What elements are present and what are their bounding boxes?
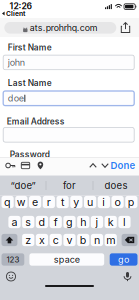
- staticText: go: [118, 254, 129, 265]
- staticText: h: [80, 215, 86, 228]
- staticText: p: [128, 195, 135, 208]
- button[interactable]: Credit cards: [19, 159, 32, 172]
- button[interactable]: m: [105, 234, 117, 246]
- staticText: d: [38, 215, 45, 228]
- button[interactable]: c: [50, 234, 62, 246]
- button[interactable]: x: [36, 234, 48, 246]
- button[interactable]: q: [1, 196, 14, 208]
- button[interactable]: Share: [119, 21, 133, 35]
- staticText: m: [106, 233, 115, 246]
- staticText: u: [87, 195, 93, 208]
- staticText: e: [32, 195, 38, 208]
- button[interactable]: john: [3, 55, 134, 70]
- staticText: c: [53, 233, 59, 246]
- staticText: s: [25, 215, 31, 228]
- button[interactable]: l: [118, 216, 131, 228]
- button[interactable]: 123: [1, 253, 24, 266]
- staticText: for: [63, 180, 76, 191]
- staticText: v: [66, 233, 72, 246]
- staticText: First Name: [8, 42, 52, 52]
- button[interactable]: Contact info: [34, 159, 47, 172]
- button[interactable]: Previous field: [87, 159, 99, 171]
- staticText: Last Name: [8, 78, 52, 88]
- staticText: Client: [6, 10, 25, 18]
- staticText: Email Address: [7, 116, 65, 127]
- button[interactable]: doe: [3, 91, 134, 106]
- staticText: n: [94, 233, 100, 246]
- button[interactable]: Passwords: [4, 159, 17, 172]
- button[interactable]: space: [29, 253, 104, 266]
- button[interactable]: j: [91, 216, 103, 228]
- button[interactable]: y: [70, 196, 82, 208]
- staticText: k: [108, 215, 114, 228]
- staticText: w: [17, 195, 26, 208]
- button[interactable]: Emoji: [4, 270, 17, 283]
- staticText: Password: [10, 149, 50, 160]
- button[interactable]: h: [77, 216, 89, 228]
- button[interactable]: g: [63, 216, 76, 228]
- staticText: ats.prohrhq.com: [30, 22, 98, 33]
- button[interactable]: d: [36, 216, 48, 228]
- button[interactable]: k: [105, 216, 117, 228]
- staticText: a: [11, 215, 17, 228]
- button[interactable]: does: [94, 175, 138, 195]
- staticText: space: [54, 254, 80, 265]
- button[interactable]: f: [50, 216, 62, 228]
- button[interactable]: b: [77, 234, 89, 246]
- button[interactable]: ats.prohrhq.com: [4, 22, 116, 34]
- staticText: z: [25, 233, 31, 246]
- staticText: o: [115, 195, 121, 208]
- staticText: does: [104, 180, 127, 191]
- staticText: i: [102, 195, 105, 208]
- button[interactable]: u: [84, 196, 96, 208]
- button[interactable]: t: [56, 196, 69, 208]
- button[interactable]: w: [15, 196, 27, 208]
- button[interactable]: go: [110, 253, 137, 266]
- button[interactable]: [3, 127, 134, 142]
- button[interactable]: z: [22, 234, 34, 246]
- staticText: “doe”: [10, 180, 35, 191]
- button[interactable]: n: [91, 234, 103, 246]
- button[interactable]: Client: [0, 10, 28, 17]
- button[interactable]: r: [43, 196, 55, 208]
- staticText: y: [73, 195, 79, 208]
- staticText: q: [4, 195, 11, 208]
- button[interactable]: Done: [108, 159, 138, 171]
- staticText: doe: [8, 93, 24, 104]
- staticText: f: [54, 215, 58, 228]
- staticText: 123: [6, 255, 19, 264]
- staticText: g: [66, 215, 73, 228]
- staticText: 12:26: [9, 1, 32, 11]
- staticText: x: [39, 233, 45, 246]
- button[interactable]: v: [63, 234, 76, 246]
- button[interactable]: for: [47, 175, 91, 195]
- button[interactable]: Dictation: [121, 270, 134, 283]
- button[interactable]: Next field: [99, 159, 111, 171]
- button[interactable]: [122, 234, 137, 246]
- staticText: j: [95, 215, 98, 228]
- button[interactable]: [1, 234, 17, 246]
- button[interactable]: “doe”: [1, 175, 45, 195]
- button[interactable]: s: [22, 216, 34, 228]
- staticText: john: [8, 57, 25, 68]
- button[interactable]: p: [125, 196, 137, 208]
- button[interactable]: a: [8, 216, 21, 228]
- button[interactable]: o: [111, 196, 124, 208]
- staticText: l: [123, 215, 126, 228]
- button[interactable]: i: [98, 196, 110, 208]
- staticText: Done: [110, 160, 135, 171]
- staticText: r: [47, 195, 51, 208]
- staticText: b: [80, 233, 87, 246]
- button[interactable]: e: [29, 196, 41, 208]
- staticText: t: [61, 195, 64, 208]
